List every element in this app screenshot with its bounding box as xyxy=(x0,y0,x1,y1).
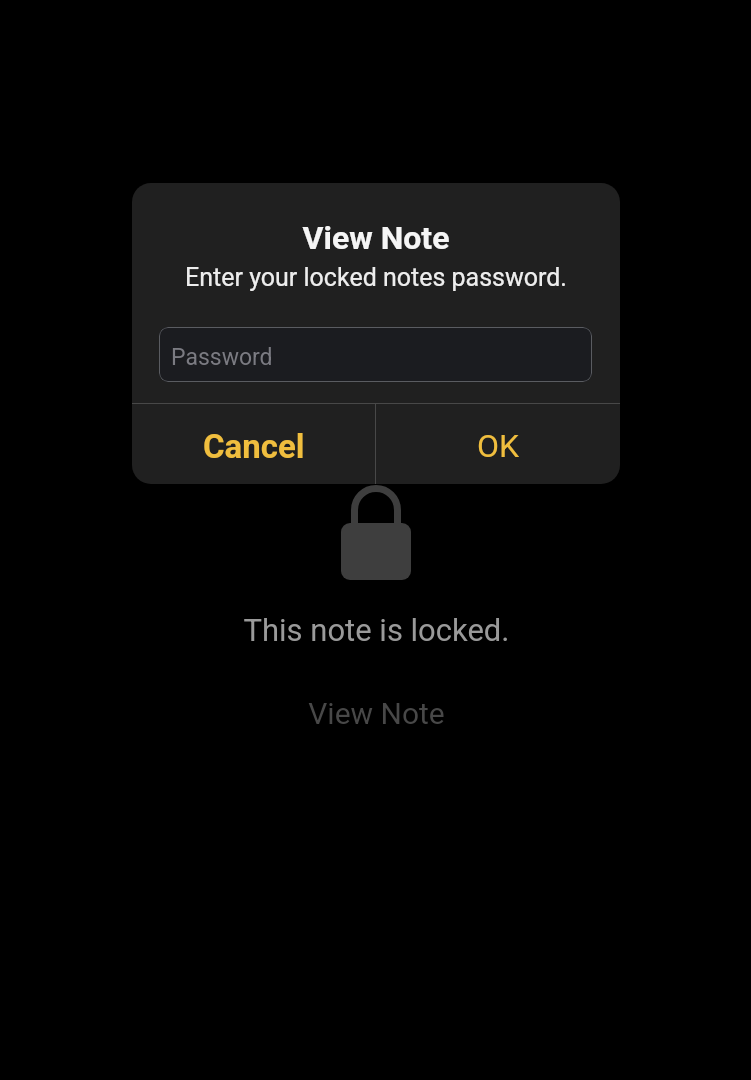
button[interactable]: OK xyxy=(376,404,620,484)
other: Note locked xyxy=(341,485,411,580)
staticText: View Note xyxy=(132,219,620,257)
staticText: Cancel xyxy=(203,427,305,466)
staticText: This note is locked. xyxy=(243,612,510,648)
button[interactable]: View Note xyxy=(276,681,476,743)
button[interactable]: Cancel xyxy=(132,404,375,484)
staticText: Enter your locked notes password. xyxy=(132,263,620,292)
staticText: Password xyxy=(171,344,273,371)
button[interactable]: Password xyxy=(159,327,592,382)
staticText: OK xyxy=(477,427,520,465)
staticText: View Note xyxy=(308,696,445,731)
